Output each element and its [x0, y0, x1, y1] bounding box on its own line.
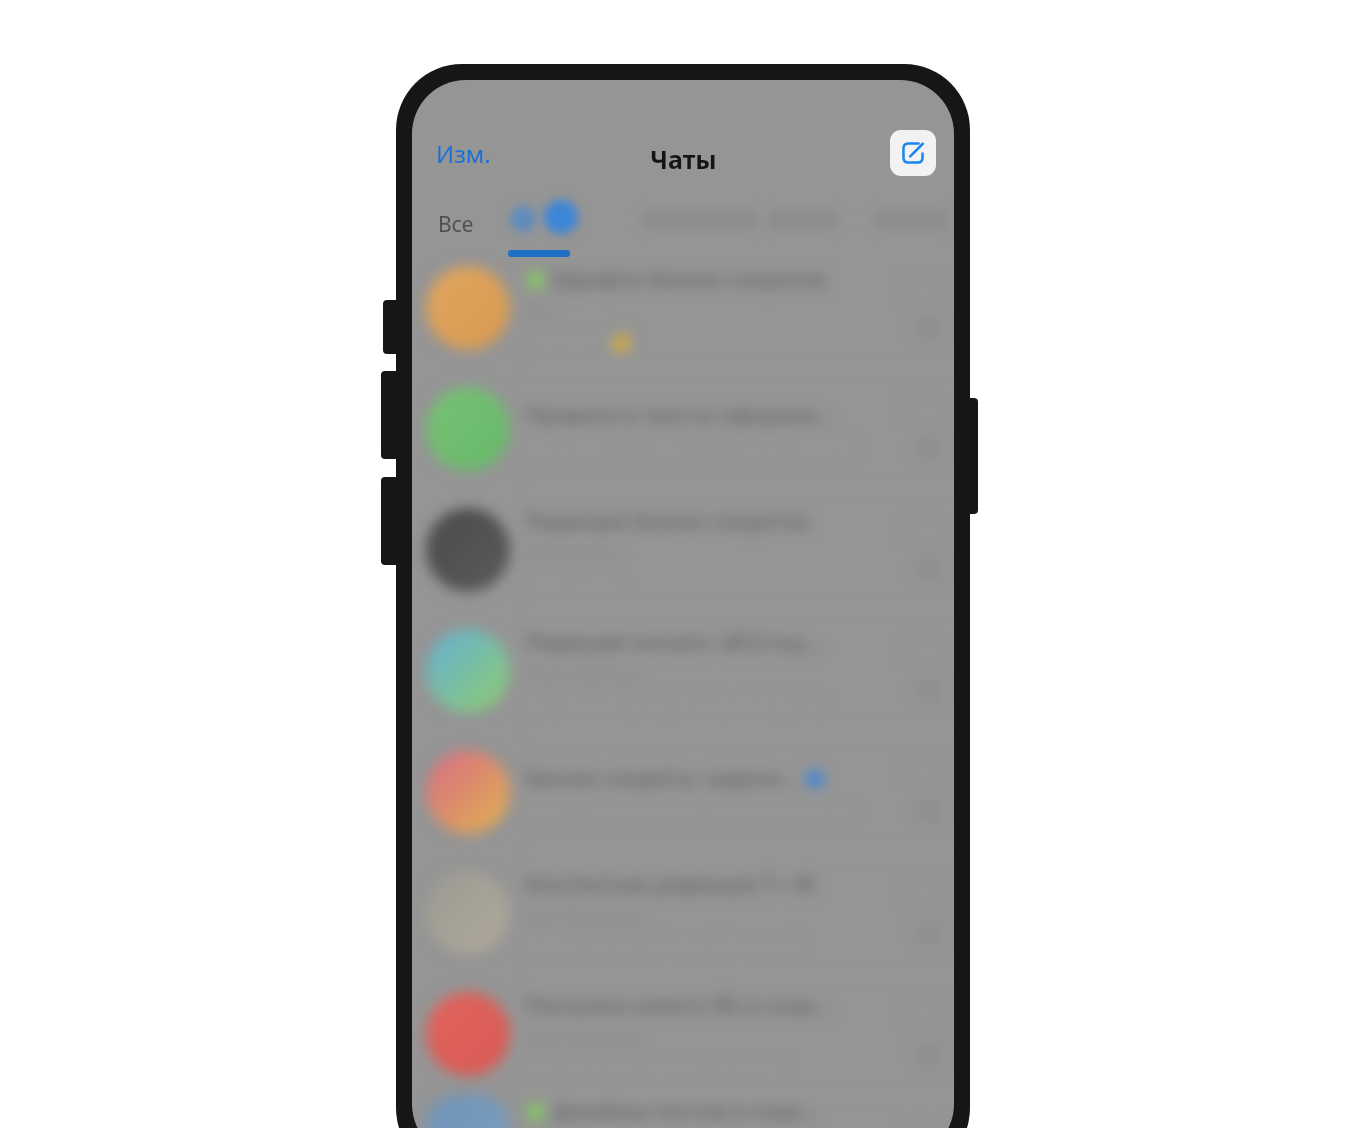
- staticText: Чаты: [650, 142, 717, 176]
- staticText: Бизнес-секреты: задачи…: [526, 764, 798, 793]
- staticText: Дизайны постов и соци…: [552, 1097, 819, 1126]
- button[interactable]: Рассылки нового ББ и соци…: [412, 974, 954, 1094]
- button[interactable]: Изм.: [430, 131, 497, 176]
- staticText: Редакция Бизнес-секретов: [526, 507, 809, 536]
- button[interactable]: Дизайны постов и соци…: [412, 1095, 954, 1128]
- staticText: Шрифты Бизнес-секретов: [552, 265, 826, 294]
- button[interactable]: Шрифты Бизнес-секретов: [412, 248, 954, 368]
- staticText: Редакция начало «ВСё ещ…: [526, 628, 822, 657]
- staticText: Правила и тексты оформле…: [526, 401, 835, 430]
- staticText: Контентная редакция Т—Ж: [526, 870, 815, 899]
- staticText: Изм.: [436, 137, 491, 170]
- button[interactable]: New message: [890, 130, 936, 176]
- button[interactable]: Правила и тексты оформле…: [412, 369, 954, 489]
- button[interactable]: Бизнес-секреты: задачи…: [412, 732, 954, 852]
- staticText: Рассылки нового ББ и соци…: [526, 991, 832, 1020]
- button[interactable]: Редакция Бизнес-секретов: [412, 490, 954, 610]
- staticText: Подписка 💰: [526, 329, 632, 352]
- button[interactable]: Все: [434, 206, 478, 243]
- button[interactable]: Редакция начало «ВСё ещ…: [412, 611, 954, 731]
- button[interactable]: Контентная редакция Т—Ж: [412, 853, 954, 973]
- staticText: Все: [438, 210, 474, 239]
